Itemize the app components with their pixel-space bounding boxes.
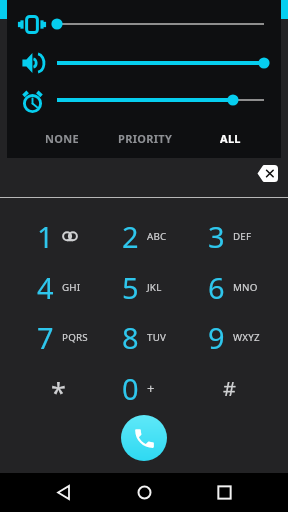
staticText: ALL bbox=[220, 131, 241, 146]
button[interactable]: Home bbox=[120, 473, 168, 512]
button[interactable]: 7 bbox=[16, 312, 101, 362]
button[interactable]: * bbox=[16, 363, 101, 413]
button[interactable]: Alarm volume bbox=[51, 82, 271, 118]
button[interactable]: PRIORITY bbox=[103, 123, 188, 153]
staticText: 1 bbox=[37, 217, 54, 256]
button[interactable]: Alarm volume bbox=[14, 82, 50, 118]
staticText: JKL bbox=[147, 281, 162, 294]
staticText: ABC bbox=[147, 230, 167, 243]
staticText: TUV bbox=[147, 331, 167, 344]
button[interactable]: 0 bbox=[101, 363, 186, 413]
button[interactable]: NONE bbox=[19, 123, 104, 153]
staticText: 2 bbox=[122, 217, 139, 256]
button[interactable]: Media volume bbox=[51, 45, 271, 81]
staticText: # bbox=[223, 375, 236, 402]
staticText: MNO bbox=[233, 281, 258, 294]
button[interactable]: 6 bbox=[187, 262, 272, 312]
button[interactable]: Back bbox=[40, 473, 88, 512]
staticText: GHI bbox=[62, 281, 81, 294]
button[interactable]: 5 bbox=[101, 262, 186, 312]
staticText: 4 bbox=[37, 268, 54, 307]
button[interactable]: 9 bbox=[187, 312, 272, 362]
staticText: * bbox=[51, 374, 66, 411]
staticText: 9 bbox=[208, 318, 225, 357]
staticText: 5 bbox=[122, 268, 139, 307]
staticText: + bbox=[147, 379, 155, 397]
staticText: PQRS bbox=[62, 331, 88, 344]
staticText: 8 bbox=[122, 318, 139, 357]
button[interactable]: Ring volume bbox=[51, 6, 271, 42]
button[interactable]: 3 bbox=[187, 211, 272, 261]
button[interactable]: 1 bbox=[16, 211, 101, 261]
staticText: PRIORITY bbox=[118, 131, 173, 146]
button[interactable]: # bbox=[187, 363, 272, 413]
button[interactable]: 2 bbox=[101, 211, 186, 261]
staticText: 0 bbox=[122, 369, 139, 408]
button[interactable]: Recents bbox=[200, 473, 248, 512]
staticText: NONE bbox=[45, 131, 79, 146]
staticText: 3 bbox=[208, 217, 225, 256]
button[interactable]: Media volume bbox=[14, 45, 50, 81]
staticText: 6 bbox=[208, 268, 225, 307]
button[interactable]: Backspace bbox=[250, 160, 284, 186]
staticText: DEF bbox=[233, 230, 252, 243]
staticText: 7 bbox=[37, 318, 54, 357]
button[interactable]: Call bbox=[121, 415, 167, 461]
staticText: WXYZ bbox=[233, 331, 260, 344]
button[interactable]: 8 bbox=[101, 312, 186, 362]
button[interactable]: ALL bbox=[188, 123, 273, 153]
button[interactable]: 4 bbox=[16, 262, 101, 312]
button[interactable]: Vibrate bbox=[14, 6, 50, 42]
